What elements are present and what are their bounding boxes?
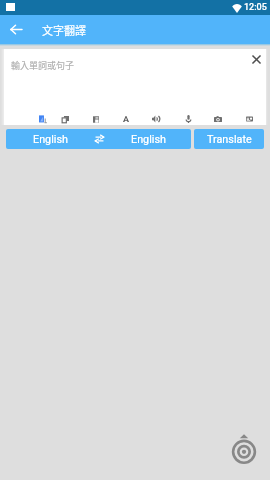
- staticText: 輸入單詞或句子: [11, 59, 75, 72]
- button[interactable]: Text size: [117, 110, 135, 128]
- button[interactable]: Translate: [194, 129, 264, 149]
- button[interactable]: Assistant: [230, 432, 258, 466]
- staticText: English: [131, 133, 166, 146]
- button[interactable]: Clear text: [248, 51, 264, 67]
- button[interactable]: Copy: [56, 110, 74, 128]
- button[interactable]: Listen: [147, 110, 165, 128]
- button[interactable]: Scan text: [240, 110, 258, 128]
- button[interactable]: Back: [6, 19, 26, 39]
- button[interactable]: English: [6, 129, 94, 149]
- staticText: 12:05: [244, 2, 267, 13]
- staticText: Translate: [207, 133, 252, 146]
- button[interactable]: Translate document: [34, 110, 52, 128]
- button[interactable]: Swap languages: [94, 129, 105, 149]
- button[interactable]: English: [105, 129, 191, 149]
- staticText: English: [33, 133, 68, 146]
- button[interactable]: Paste: [87, 110, 105, 128]
- button[interactable]: Voice input: [179, 110, 197, 128]
- button[interactable]: Camera: [209, 110, 227, 128]
- staticText: 文字翻譯: [42, 22, 86, 38]
